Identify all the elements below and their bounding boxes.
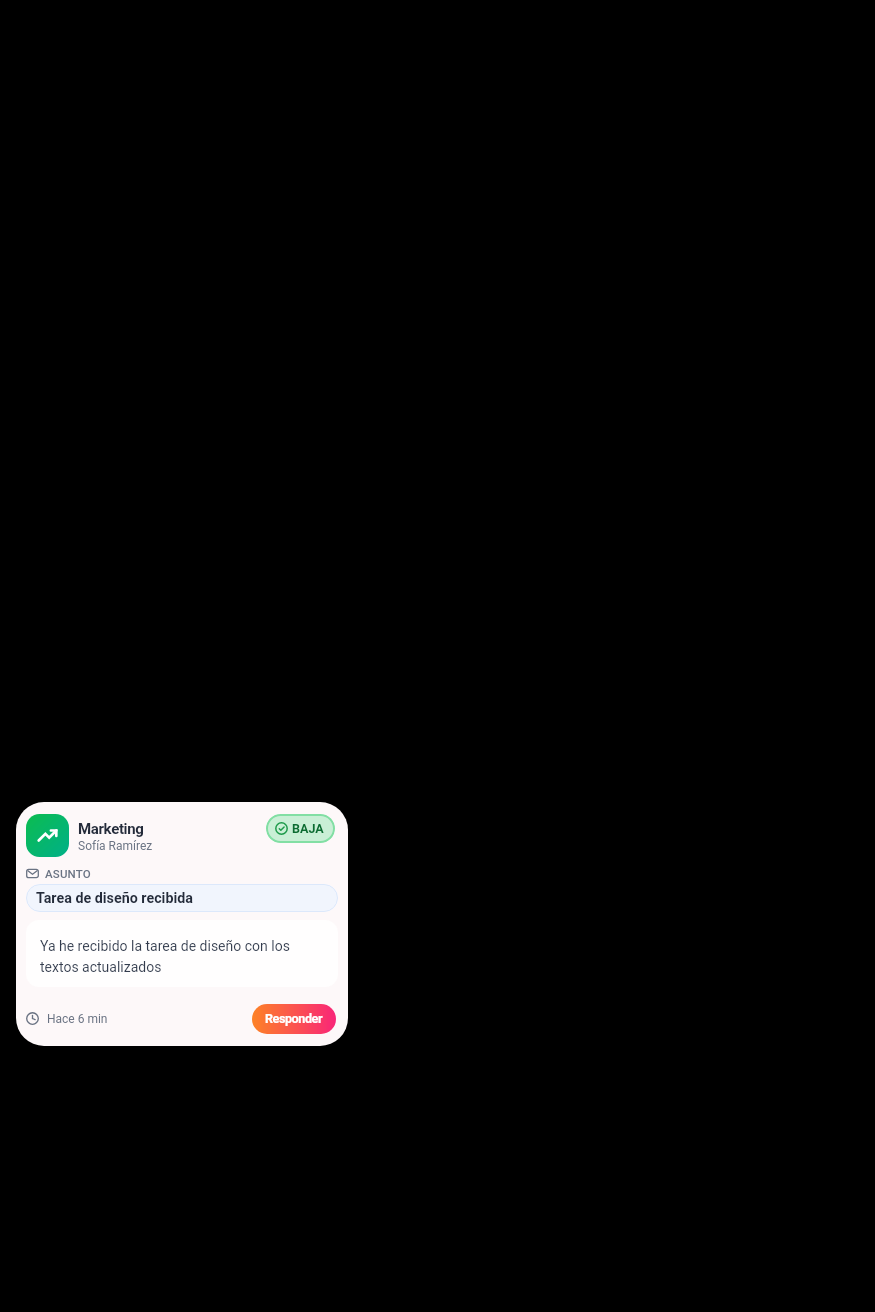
- staticText: BAJA: [292, 821, 324, 836]
- staticText: Marketing: [78, 820, 144, 838]
- other: Time: [26, 1012, 39, 1025]
- staticText: Tarea de diseño recibida: [36, 890, 193, 907]
- staticText: Hace 6 min: [47, 1012, 108, 1026]
- staticText: Responder: [265, 1011, 323, 1026]
- staticText: ASUNTO: [45, 867, 91, 880]
- button[interactable]: Marketing channel: [26, 814, 69, 857]
- button[interactable]: Marketing channel: [16, 802, 348, 1046]
- button[interactable]: Responder: [252, 1004, 336, 1034]
- staticText: Ya he recibido la tarea de diseño con lo…: [40, 938, 328, 975]
- staticText: Sofía Ramírez: [78, 839, 153, 853]
- button[interactable]: Tarea de diseño recibida: [26, 884, 338, 912]
- button[interactable]: BAJA: [266, 814, 335, 843]
